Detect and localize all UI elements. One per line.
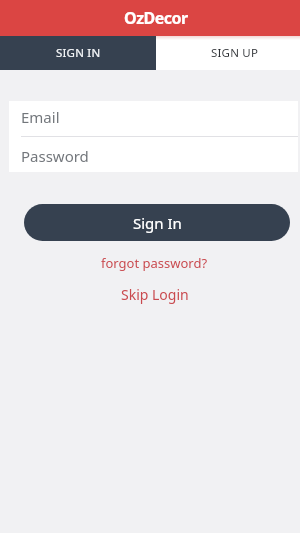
button[interactable]: SIGN IN: [0, 36, 156, 70]
staticText: Password: [21, 146, 89, 166]
staticText: forgot password?: [101, 254, 208, 272]
staticText: SIGN UP: [211, 45, 259, 61]
button[interactable]: Password: [9, 146, 298, 166]
button[interactable]: Email: [9, 107, 298, 127]
staticText: Sign In: [133, 213, 182, 233]
staticText: Skip Login: [121, 285, 189, 304]
staticText: OzDecor: [124, 7, 188, 29]
button[interactable]: SIGN UP: [156, 36, 300, 70]
staticText: Email: [21, 107, 60, 127]
staticText: SIGN IN: [56, 45, 101, 61]
button[interactable]: Skip Login: [121, 285, 189, 304]
button[interactable]: forgot password?: [101, 254, 208, 272]
button[interactable]: Sign In: [24, 204, 290, 241]
